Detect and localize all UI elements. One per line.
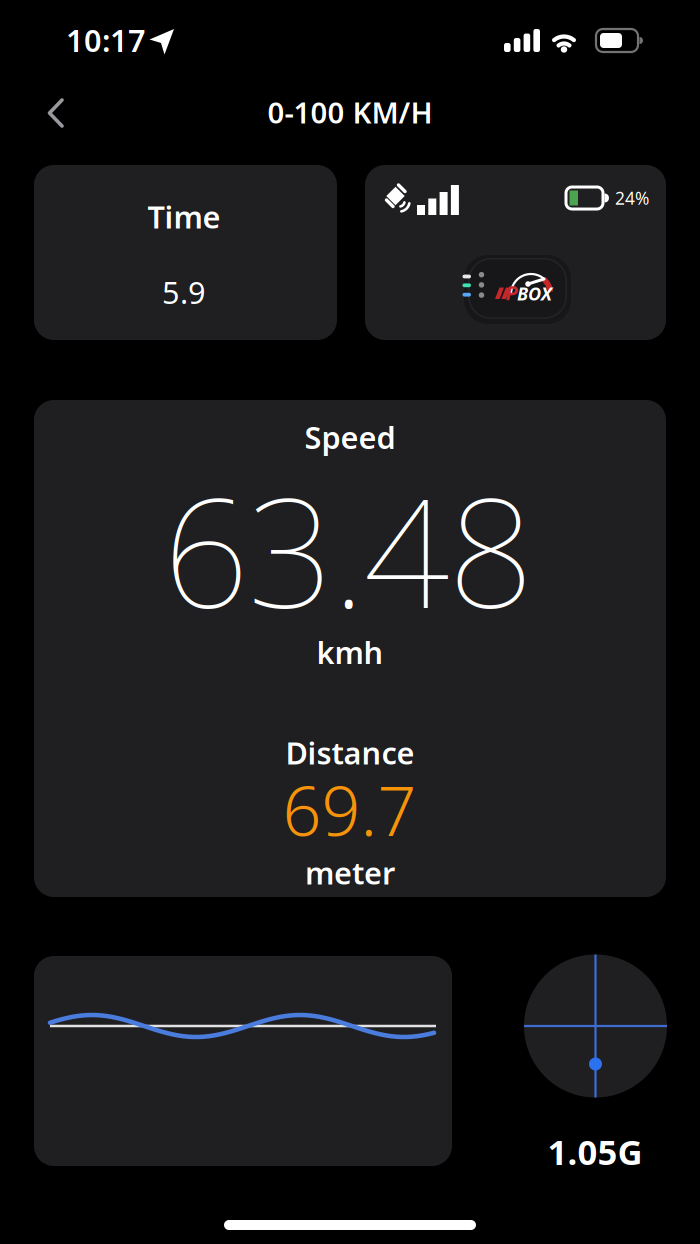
staticText: meter: [305, 852, 395, 893]
staticText: 5.9: [162, 272, 206, 312]
staticText: 0-100 KM/H: [267, 92, 432, 131]
staticText: 69.7: [282, 764, 416, 855]
staticText: Speed: [304, 417, 395, 457]
staticText: P: [505, 279, 517, 306]
staticText: 24%: [615, 186, 649, 209]
button[interactable]: Back: [12, 69, 100, 157]
staticText: kmh: [316, 632, 383, 672]
staticText: 63.48: [163, 449, 534, 650]
staticText: BOX: [517, 281, 552, 306]
staticText: Time: [147, 196, 220, 237]
staticText: 1.05G: [547, 1128, 642, 1174]
staticText: 10:17: [66, 20, 146, 60]
staticText: Distance: [285, 732, 414, 773]
